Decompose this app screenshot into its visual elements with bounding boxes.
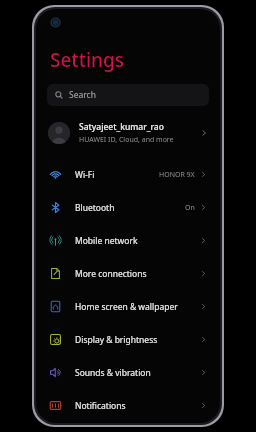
button[interactable]: Mobile network	[36, 224, 220, 257]
button[interactable]: Sounds & vibration	[36, 356, 220, 389]
staticText: Satyajeet_kumar_rao	[79, 121, 164, 133]
staticText: More connections	[75, 268, 200, 280]
button[interactable]: Notifications	[36, 389, 220, 422]
button[interactable]: Home screen & wallpaper	[36, 290, 220, 323]
button[interactable]: Bluetooth	[36, 191, 220, 224]
button[interactable]: Display & brightness	[36, 323, 220, 356]
button[interactable]: Satyajeet_kumar_rao	[36, 116, 220, 150]
staticText: Sounds & vibration	[75, 367, 200, 379]
staticText: Search	[69, 89, 96, 101]
staticText: HONOR 9X	[159, 170, 195, 180]
button[interactable]: Wi-Fi	[36, 158, 220, 191]
staticText: Home screen & wallpaper	[75, 301, 200, 313]
staticText: Notifications	[75, 400, 200, 412]
staticText: Display & brightness	[75, 334, 200, 346]
staticText: Bluetooth	[75, 202, 185, 214]
button[interactable]: Search	[47, 84, 209, 106]
staticText: On	[185, 203, 195, 213]
button[interactable]: More connections	[36, 257, 220, 290]
staticText: HUAWEI ID, Cloud, and more	[79, 135, 174, 145]
staticText: Wi-Fi	[75, 169, 159, 181]
staticText: Mobile network	[75, 235, 200, 247]
staticText: Settings	[50, 47, 124, 73]
